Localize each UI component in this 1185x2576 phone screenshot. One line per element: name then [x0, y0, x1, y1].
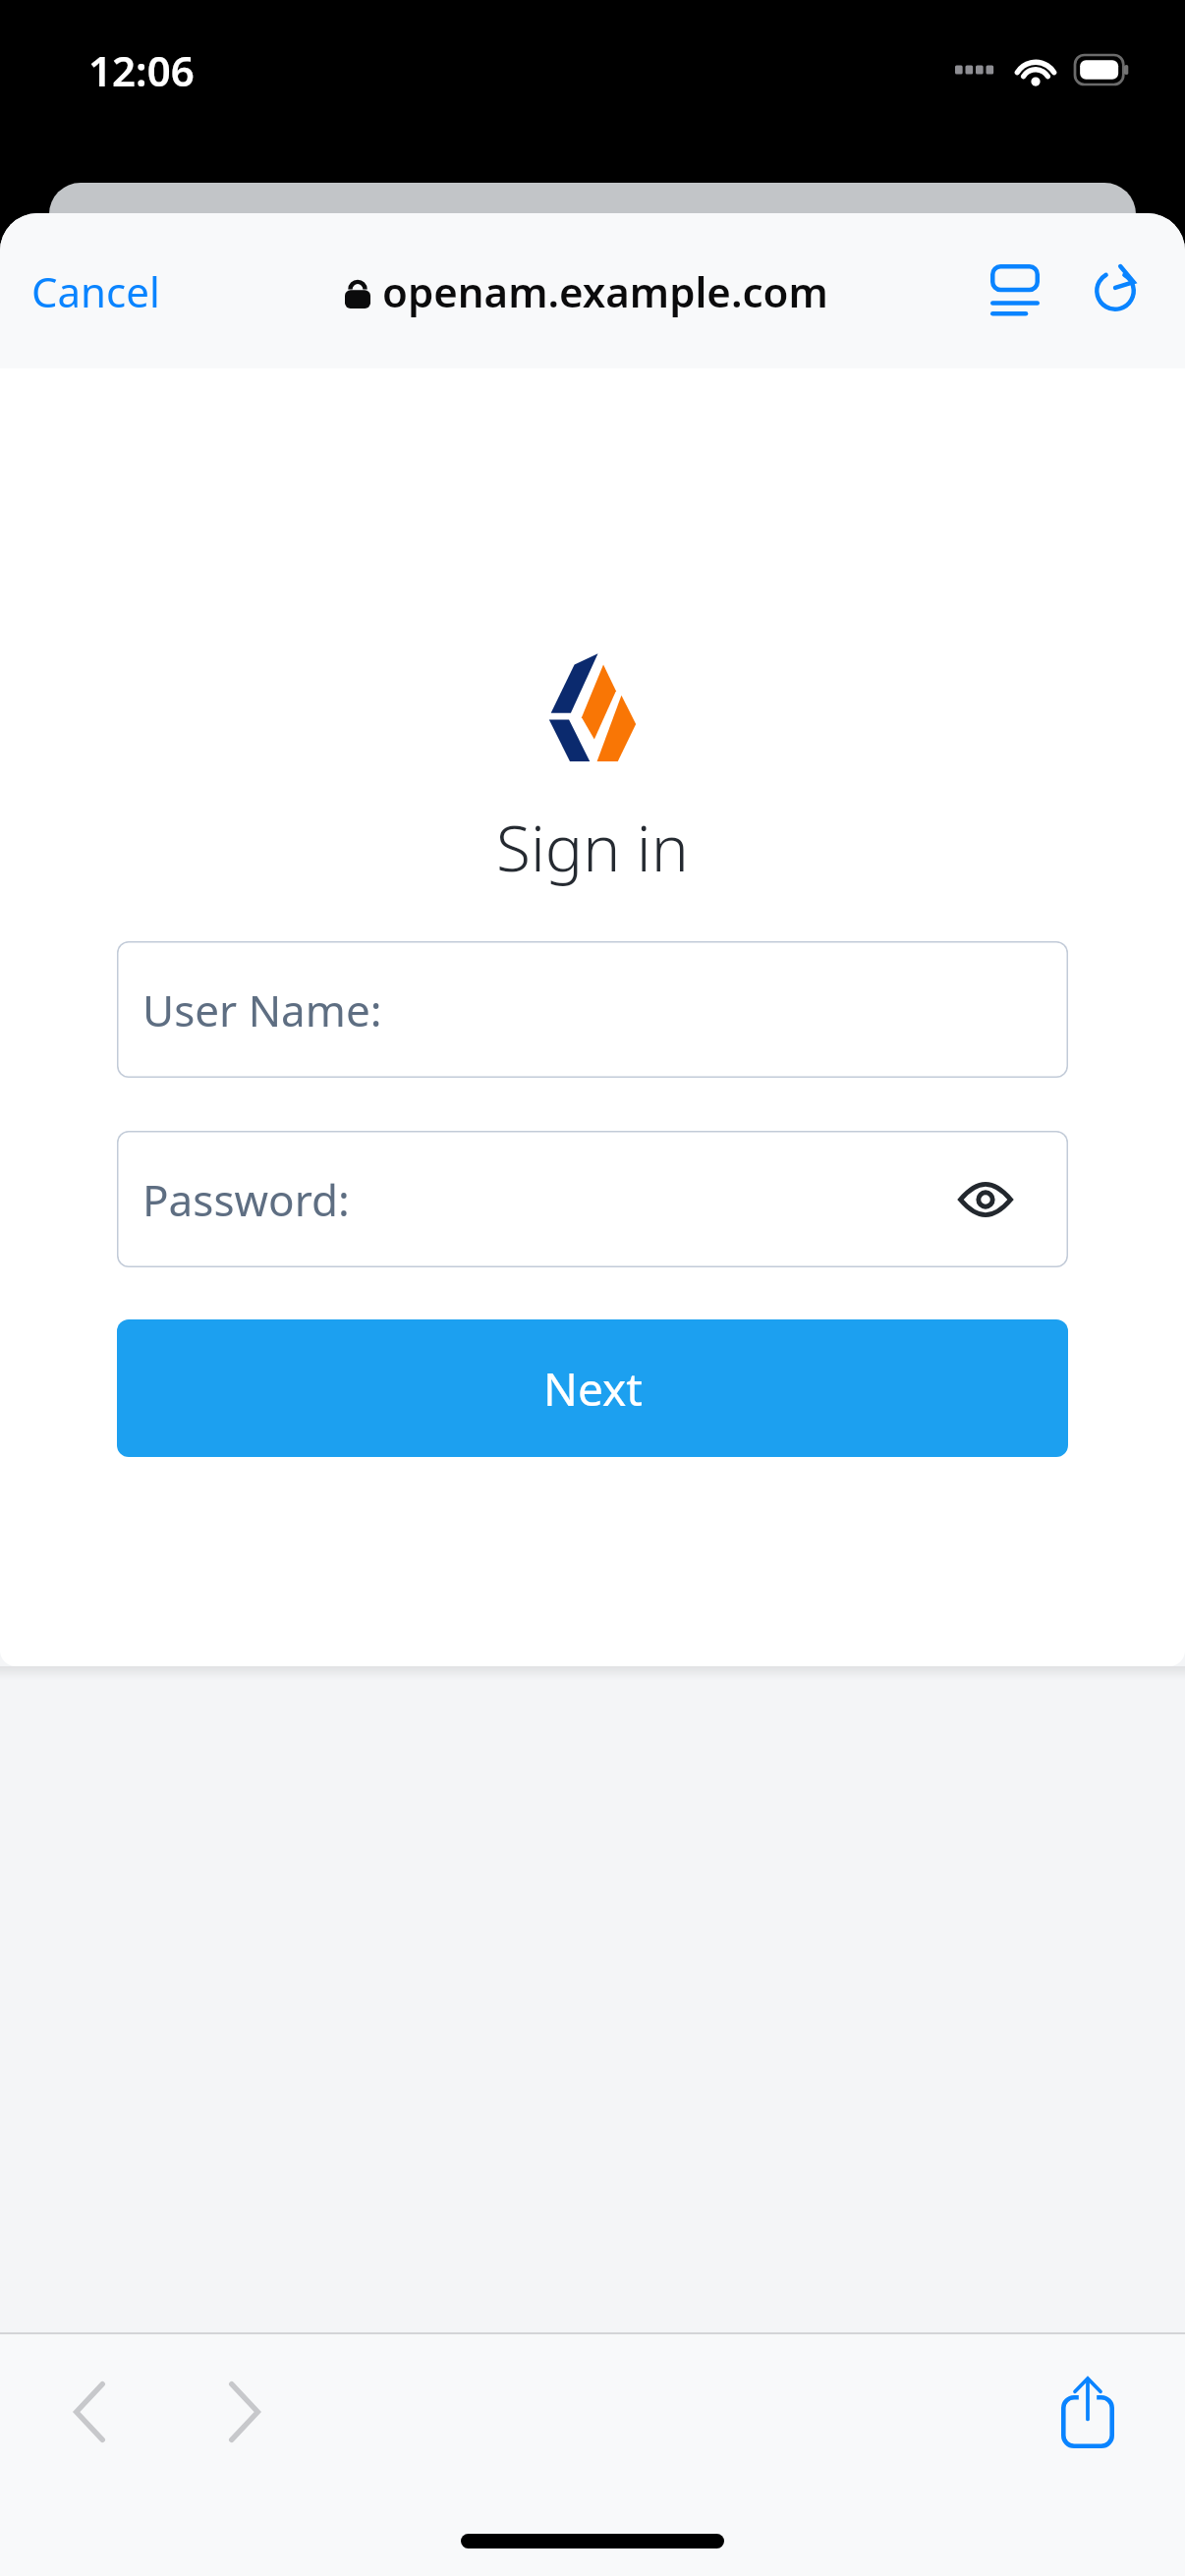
staticText: 12:06: [88, 42, 195, 98]
staticText: Next: [543, 1358, 643, 1420]
staticText: User Name:: [142, 980, 382, 1039]
button[interactable]: Back: [35, 2358, 143, 2466]
button[interactable]: Forward: [191, 2358, 299, 2466]
button[interactable]: Cancel: [18, 252, 174, 331]
button[interactable]: Share: [1034, 2358, 1142, 2466]
button[interactable]: openam.example.com: [335, 253, 838, 329]
staticText: openam.example.com: [382, 263, 828, 319]
button[interactable]: Next: [117, 1319, 1068, 1457]
button[interactable]: Reload page: [1079, 254, 1152, 327]
button[interactable]: Show password: [950, 1164, 1021, 1235]
button[interactable]: Password:: [117, 1131, 1068, 1267]
staticText: Cancel: [31, 263, 160, 319]
staticText: Password:: [142, 1170, 350, 1229]
button[interactable]: Reader view: [979, 254, 1051, 327]
button[interactable]: User Name:: [117, 941, 1068, 1078]
staticText: Sign in: [496, 805, 689, 890]
